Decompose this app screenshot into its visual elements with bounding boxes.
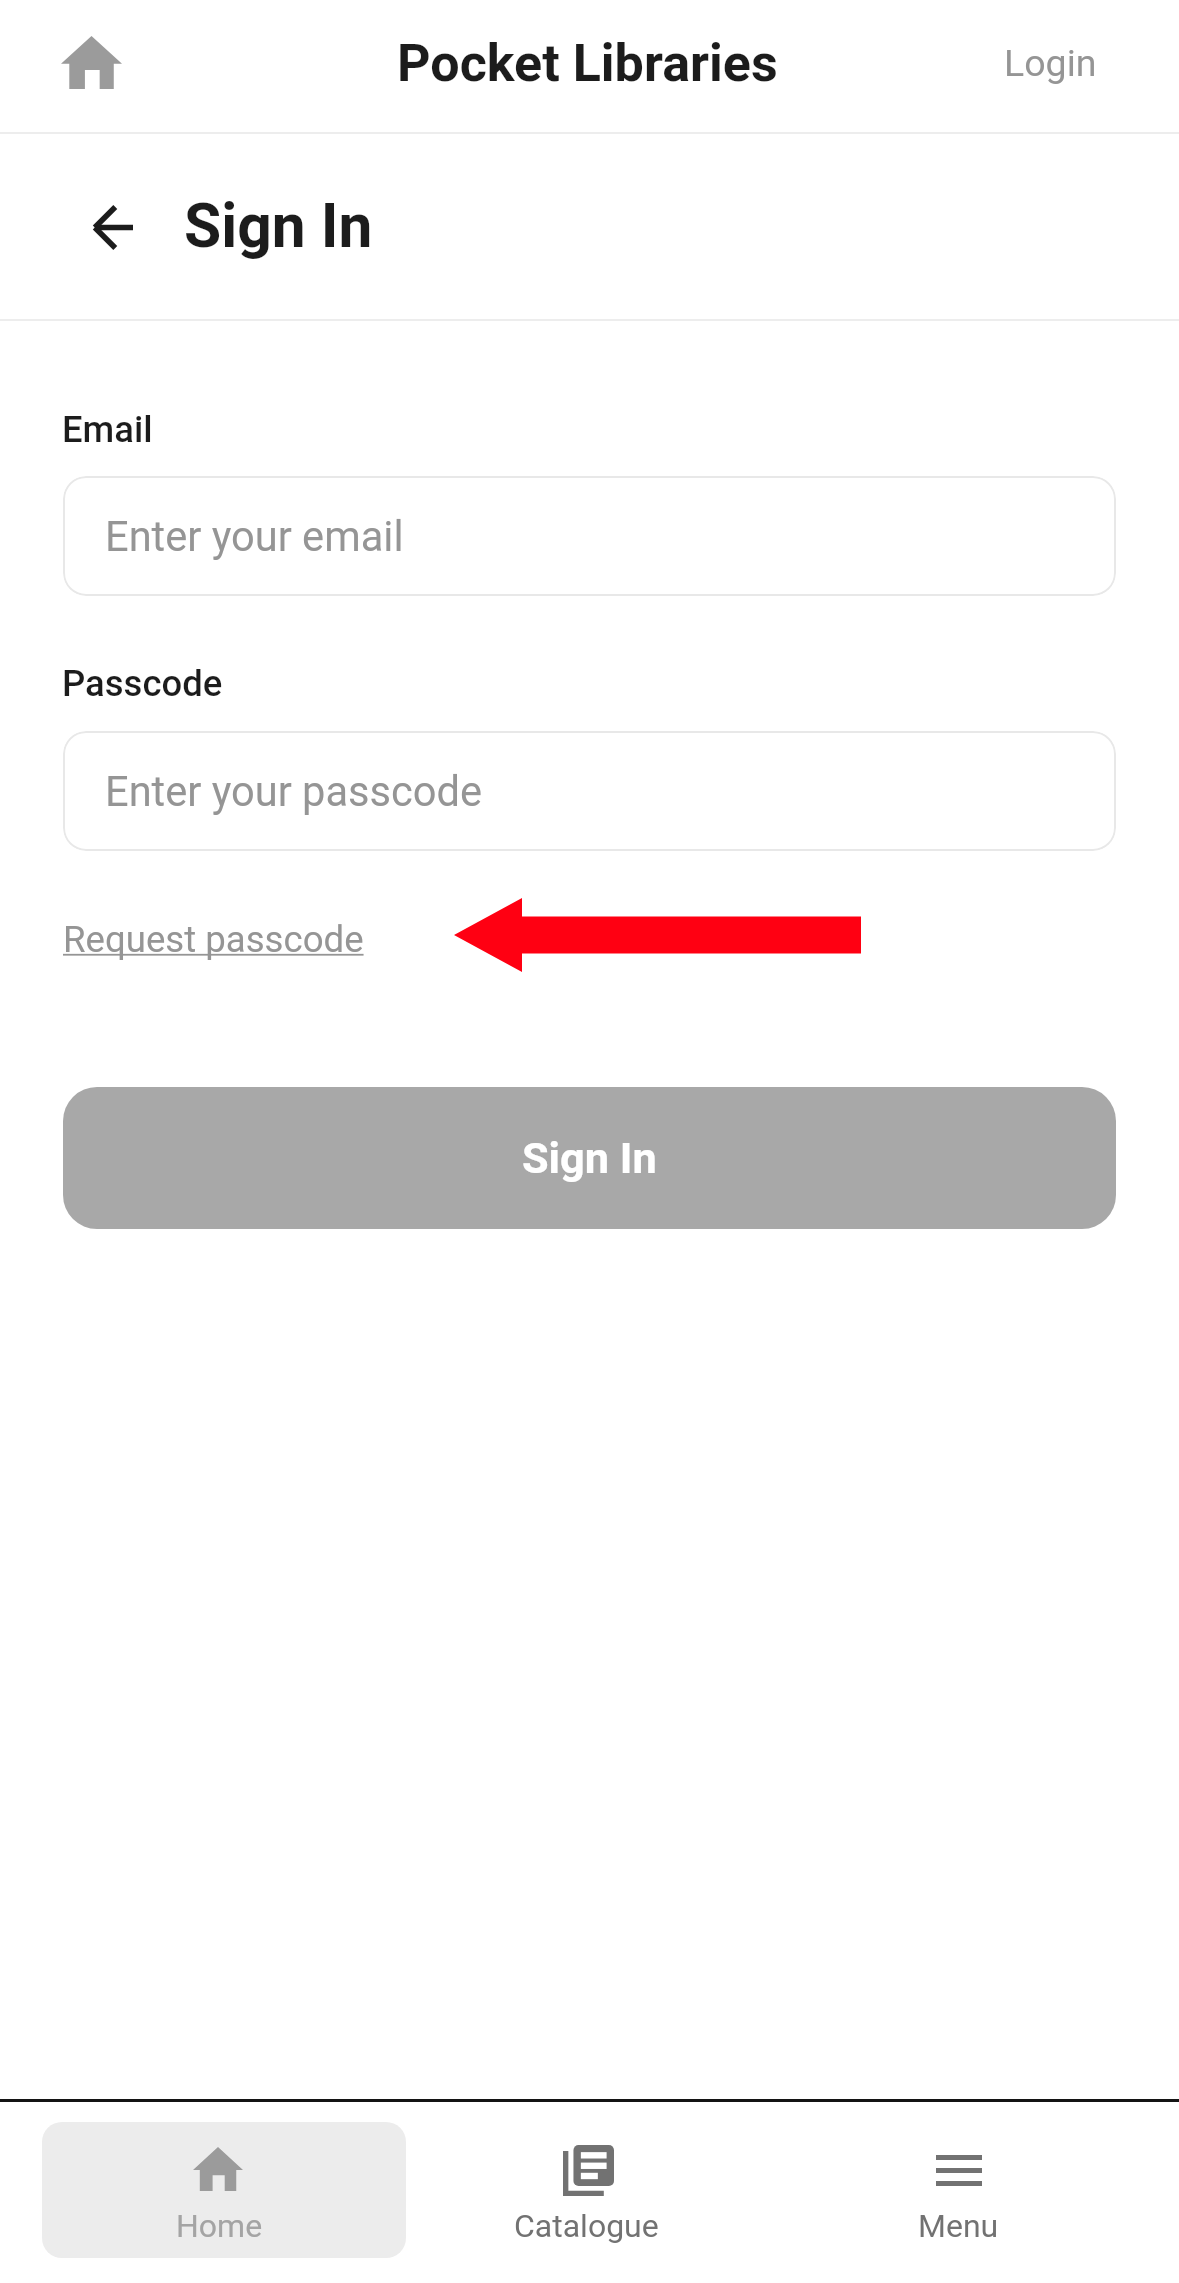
button[interactable]: Back: [67, 182, 158, 273]
staticText: Sign In: [522, 1133, 657, 1184]
button[interactable]: Request passcode: [63, 905, 364, 971]
staticText: Request passcode: [63, 918, 364, 961]
staticText: Pocket Libraries: [397, 33, 778, 94]
staticText: Enter your email: [105, 512, 404, 561]
staticText: Enter your passcode: [105, 767, 483, 816]
button[interactable]: Catalogue: [430, 2122, 750, 2258]
staticText: Login: [1004, 41, 1097, 85]
staticText: Menu: [918, 2207, 999, 2245]
staticText: Passcode: [62, 662, 223, 705]
button[interactable]: Menu: [798, 2122, 1118, 2258]
staticText: Sign In: [184, 191, 373, 262]
button[interactable]: Enter your passcode: [63, 731, 1116, 851]
button[interactable]: Home: [40, 16, 142, 108]
button[interactable]: Login: [979, 17, 1122, 109]
staticText: Home: [176, 2207, 263, 2245]
button[interactable]: Sign In: [63, 1087, 1116, 1229]
button[interactable]: Enter your email: [63, 476, 1116, 596]
staticText: Catalogue: [514, 2207, 659, 2245]
staticText: Email: [62, 408, 153, 451]
button[interactable]: Home: [42, 2122, 406, 2258]
